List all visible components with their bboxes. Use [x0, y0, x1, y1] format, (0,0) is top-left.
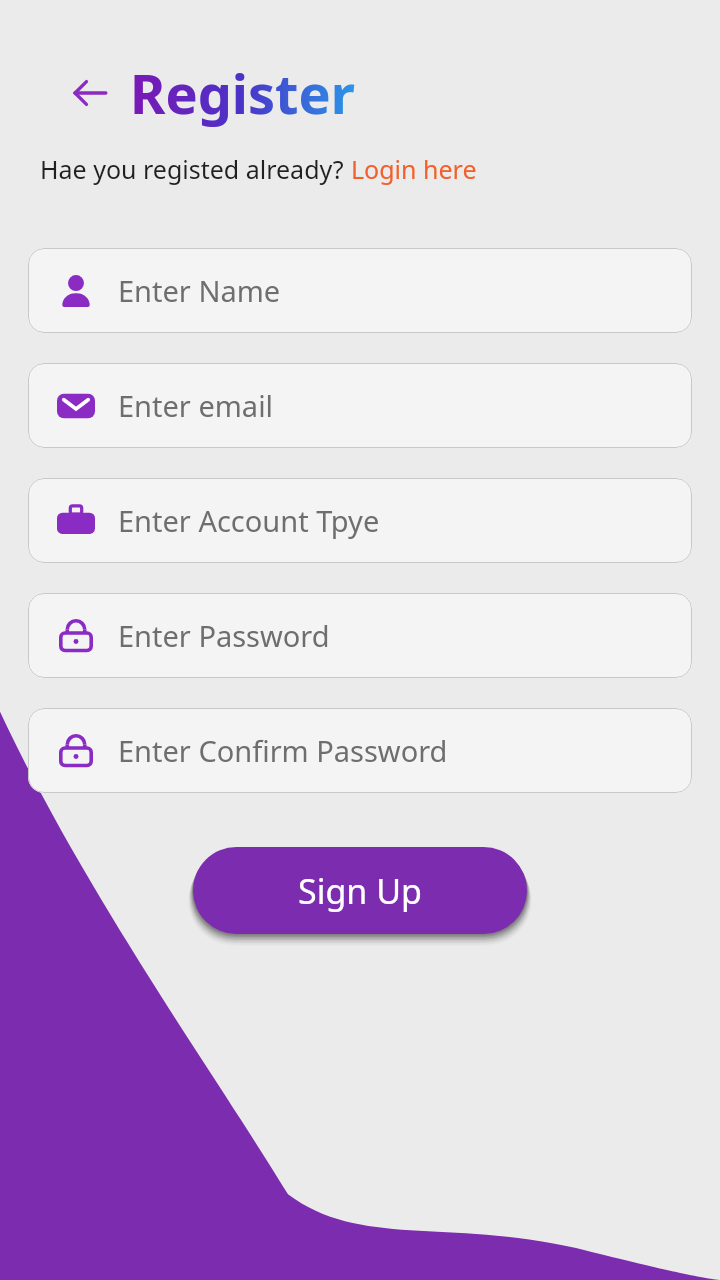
staticText: Enter Confirm Password: [118, 731, 448, 770]
staticText: Enter Password: [118, 616, 330, 655]
staticText: Enter email: [118, 386, 274, 425]
staticText: Sign Up: [298, 868, 422, 914]
button[interactable]: Back: [62, 65, 118, 121]
staticText: Enter Account Tpye: [118, 501, 380, 540]
button[interactable]: Enter Name: [28, 248, 692, 333]
button[interactable]: Sign Up: [193, 847, 527, 934]
button[interactable]: Enter email: [28, 363, 692, 448]
button[interactable]: Enter Password: [28, 593, 692, 678]
staticText: Login here: [351, 152, 477, 186]
staticText: Register: [130, 56, 355, 130]
button[interactable]: Enter Confirm Password: [28, 708, 692, 793]
staticText: Enter Name: [118, 271, 281, 310]
button[interactable]: Login here: [351, 152, 477, 186]
button[interactable]: Enter Account Tpye: [28, 478, 692, 563]
staticText: Hae you registed already?: [40, 152, 351, 186]
